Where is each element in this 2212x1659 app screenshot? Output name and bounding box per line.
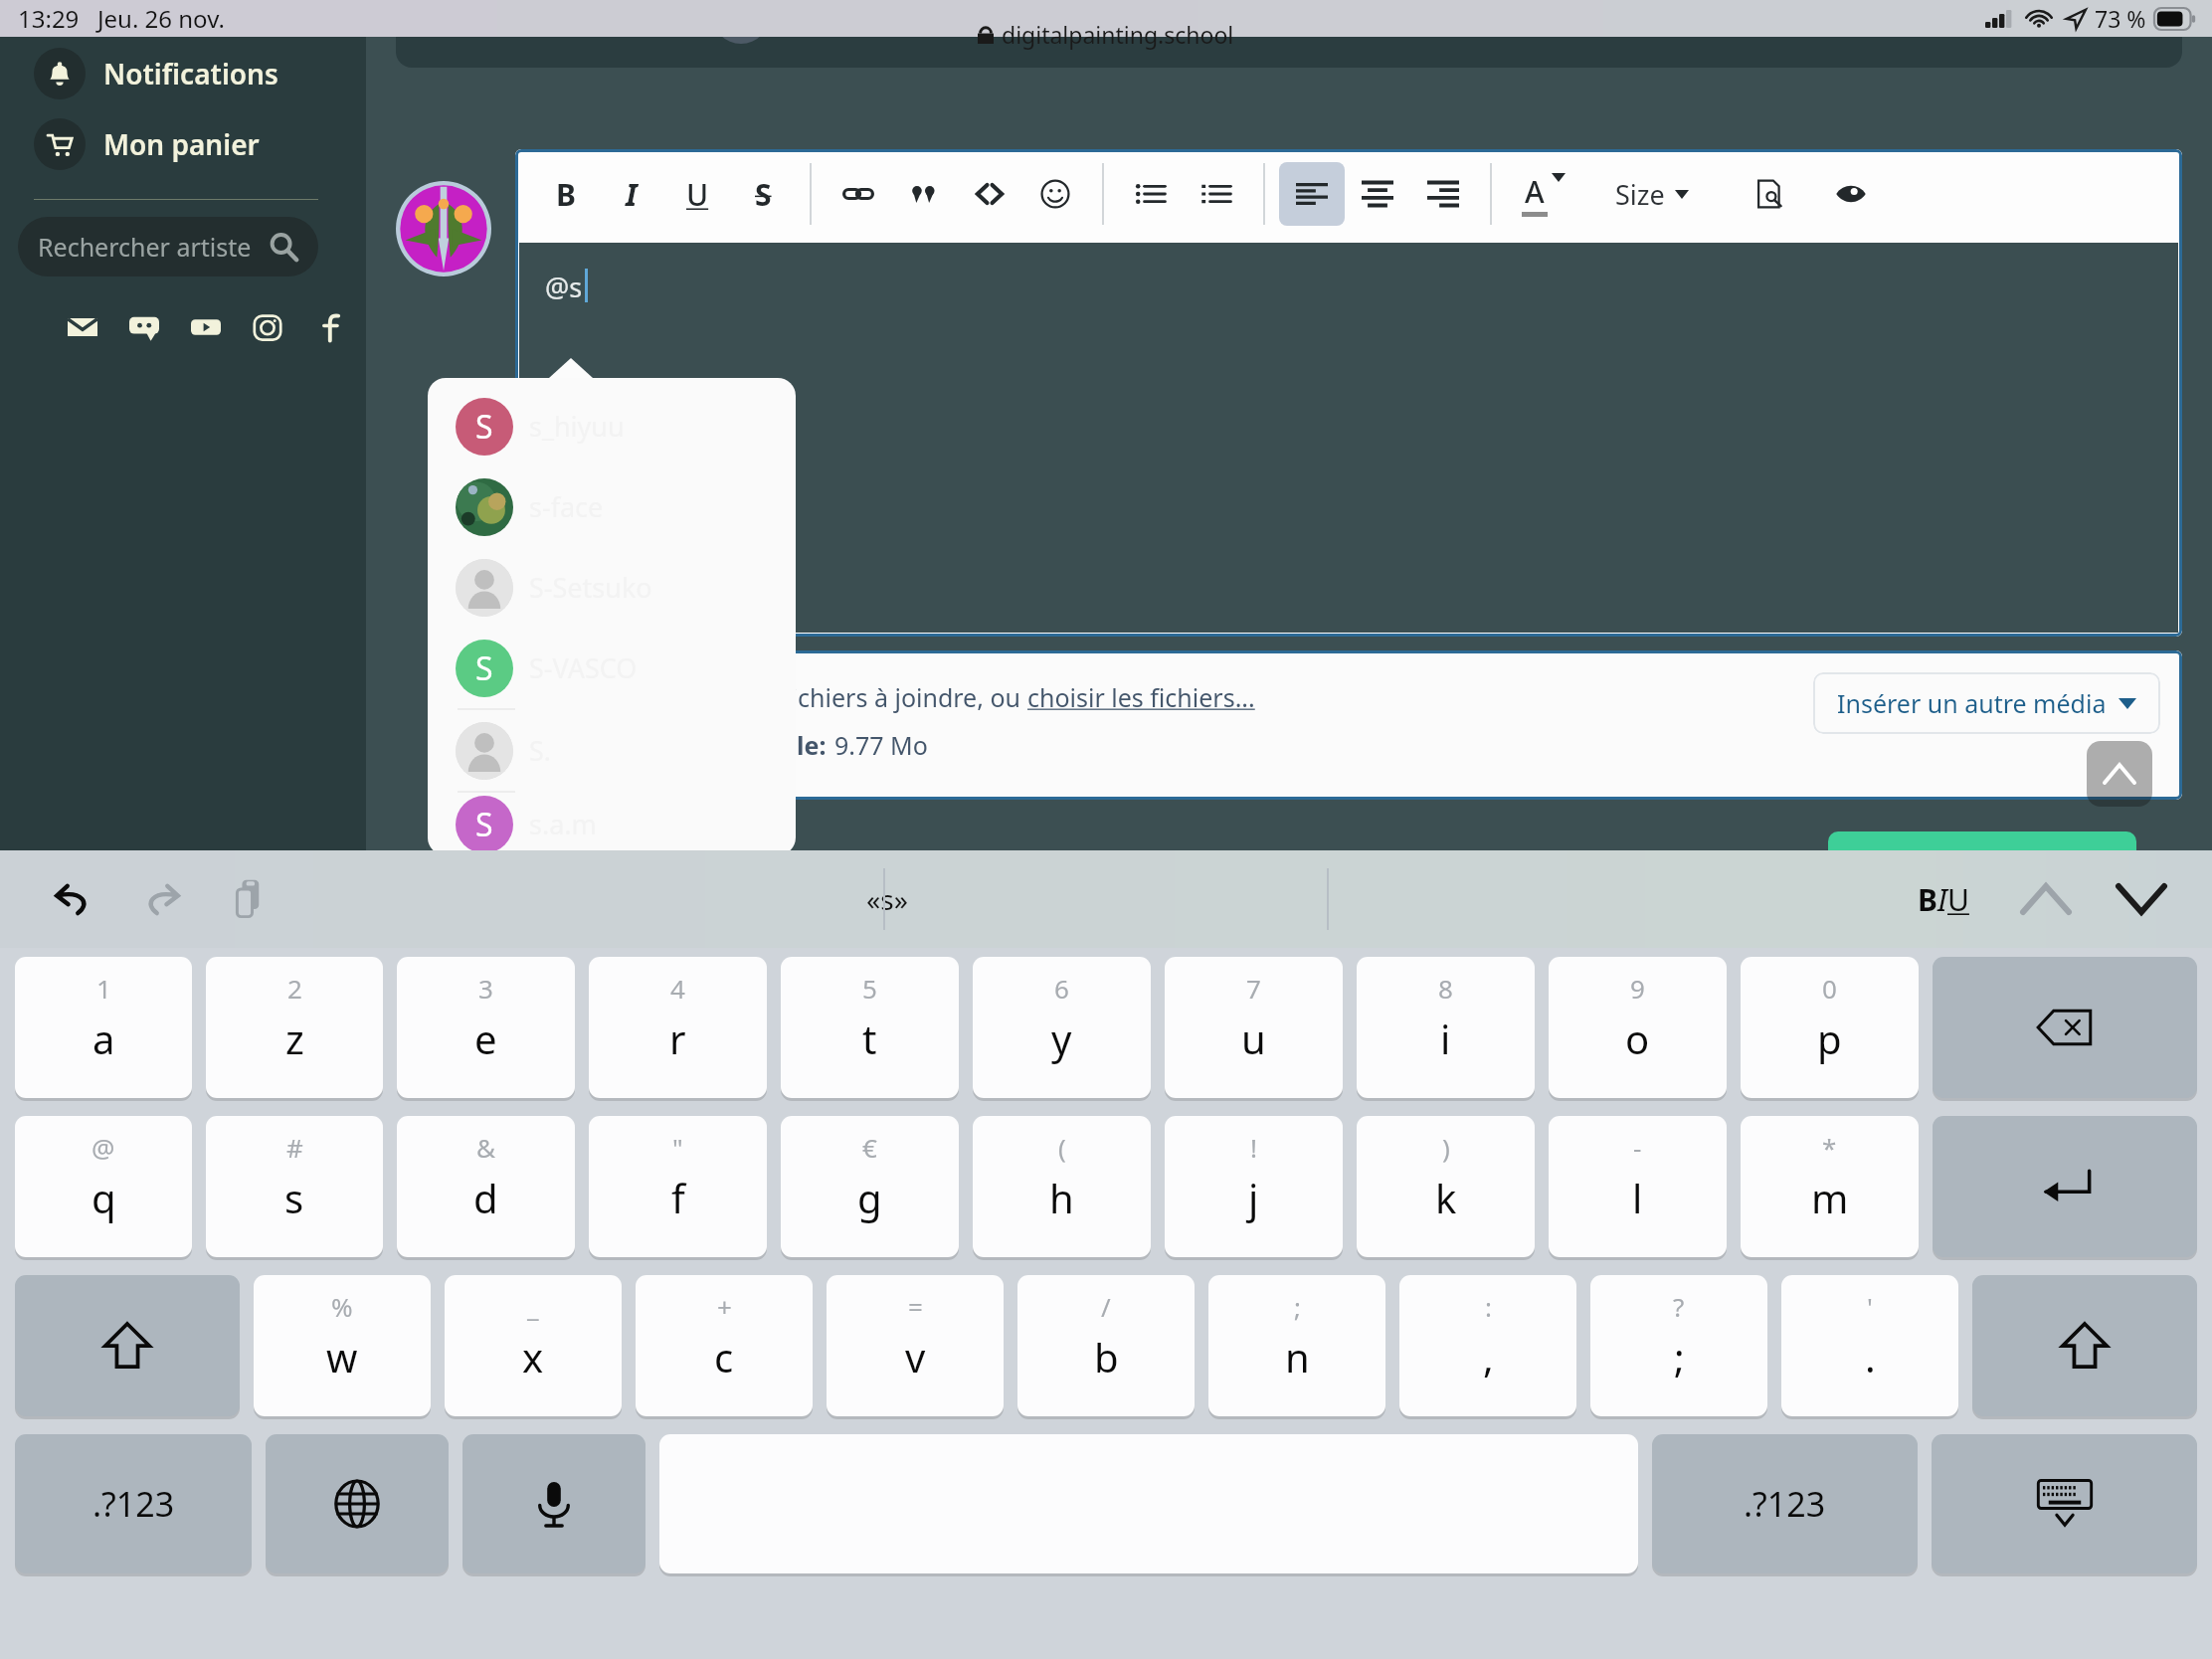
button[interactable]: Citation [891, 162, 957, 226]
button[interactable]: 6 [973, 957, 1151, 1098]
button[interactable]: ! [1165, 1116, 1343, 1257]
button[interactable]: & [397, 1116, 575, 1257]
button[interactable]: = [827, 1275, 1004, 1416]
button[interactable]: Majuscule [15, 1275, 240, 1416]
button[interactable]: Aligner à gauche [1279, 162, 1345, 226]
staticText: 13:29 [18, 2, 80, 35]
staticText: _ [527, 1289, 539, 1324]
button[interactable]: 2 [206, 957, 383, 1098]
button[interactable]: Mon panier [0, 115, 366, 173]
button[interactable]: 0 [1741, 957, 1919, 1098]
button[interactable]: Notifications [0, 45, 366, 102]
button[interactable]: Entrée [1933, 1116, 2197, 1257]
button[interactable]: Souligné [664, 162, 730, 226]
button[interactable]: 7 [1165, 957, 1343, 1098]
button[interactable]: S-Setsuko [428, 547, 796, 628]
button[interactable]: % [254, 1275, 431, 1416]
button[interactable]: B [1910, 871, 1977, 928]
button[interactable]: Size [1607, 164, 1697, 225]
button[interactable]: 9 [1549, 957, 1727, 1098]
staticText: ! [1250, 1130, 1257, 1165]
button[interactable]: @ [15, 1116, 192, 1257]
button[interactable]: 3 [397, 957, 575, 1098]
button[interactable]: Lien [826, 162, 891, 226]
button[interactable]: .?123 [15, 1434, 252, 1573]
staticText: Mon panier [103, 125, 260, 163]
button[interactable]: Espace [659, 1434, 1638, 1573]
button[interactable]: Rechercher artiste [18, 217, 318, 276]
button[interactable]: S [428, 628, 796, 708]
button[interactable]: S [428, 386, 796, 466]
staticText: e [474, 1012, 497, 1065]
button[interactable]: # [206, 1116, 383, 1257]
button[interactable]: * [1741, 1116, 1919, 1257]
button[interactable]: + [636, 1275, 813, 1416]
button[interactable]: ) [1357, 1116, 1535, 1257]
staticText: ; [1294, 1289, 1301, 1324]
button[interactable]: choisir les fichiers... [1027, 680, 1255, 714]
button[interactable]: Gras [533, 162, 599, 226]
button[interactable]: ? [1590, 1275, 1767, 1416]
staticText: B [1918, 879, 1937, 920]
button[interactable]: - [1549, 1116, 1727, 1257]
button[interactable]: Liste à puces [1118, 162, 1184, 226]
button[interactable]: Liste numérotée [1184, 162, 1249, 226]
button[interactable]: Centrer [1345, 162, 1410, 226]
button[interactable]: Émoji [1022, 162, 1088, 226]
button[interactable]: «s» [866, 880, 908, 918]
button[interactable]: Aperçu du document [1737, 162, 1802, 226]
button[interactable]: Précédent [2011, 864, 2081, 934]
button[interactable]: Rétablir [131, 868, 193, 930]
button[interactable]: Retour en haut [2087, 741, 2152, 807]
staticText: Taille maximale totale: [545, 728, 827, 762]
button[interactable]: 8 [1357, 957, 1535, 1098]
button[interactable]: 4 [589, 957, 767, 1098]
button[interactable]: S [428, 793, 796, 855]
button[interactable]: _ [445, 1275, 622, 1416]
button[interactable]: ' [1781, 1275, 1958, 1416]
button[interactable]: Changer de clavier [266, 1434, 449, 1573]
button[interactable]: Facebook [310, 306, 352, 348]
button[interactable]: € [781, 1116, 959, 1257]
button[interactable]: S. [428, 710, 796, 791]
button[interactable]: Coller [219, 868, 280, 930]
button[interactable]: " [589, 1116, 767, 1257]
button[interactable]: Couleur du texte [1506, 162, 1581, 226]
button[interactable]: Italique [599, 162, 664, 226]
staticText: - [1633, 1130, 1642, 1165]
button[interactable]: ( [973, 1116, 1151, 1257]
button[interactable]: Majuscule [1972, 1275, 2197, 1416]
button[interactable]: s-face [428, 466, 796, 547]
button[interactable]: Supprimer [1933, 957, 2197, 1098]
button[interactable]: Aligner à droite [1410, 162, 1476, 226]
button[interactable]: Instagram [247, 306, 288, 348]
button[interactable]: Dictée [462, 1434, 645, 1573]
button[interactable]: Masquer le clavier [1932, 1434, 2197, 1573]
button[interactable]: Aperçu [1818, 162, 1884, 226]
staticText: S [475, 405, 493, 449]
button[interactable]: Discord [123, 306, 165, 348]
button[interactable]: YouTube [185, 306, 227, 348]
button[interactable]: / [1017, 1275, 1195, 1416]
button[interactable]: .?123 [1652, 1434, 1918, 1573]
staticText: 73 % [2095, 3, 2146, 34]
staticText: 5 [862, 971, 877, 1006]
button[interactable]: Suivant [2107, 864, 2176, 934]
button[interactable]: Barré [730, 162, 796, 226]
button[interactable]: Annuler [42, 868, 103, 930]
button[interactable]: Code [957, 162, 1022, 226]
staticText: 3 [478, 971, 493, 1006]
button[interactable]: 1 [15, 957, 192, 1098]
button[interactable]: Insérer un autre média [1813, 672, 2160, 734]
staticText: m [1811, 1171, 1849, 1224]
button[interactable]: : [1399, 1275, 1576, 1416]
button[interactable]: ; [1208, 1275, 1385, 1416]
button[interactable]: 5 [781, 957, 959, 1098]
button[interactable]: Email [62, 306, 103, 348]
button[interactable] [1828, 831, 2136, 865]
staticText: f [671, 1171, 685, 1224]
